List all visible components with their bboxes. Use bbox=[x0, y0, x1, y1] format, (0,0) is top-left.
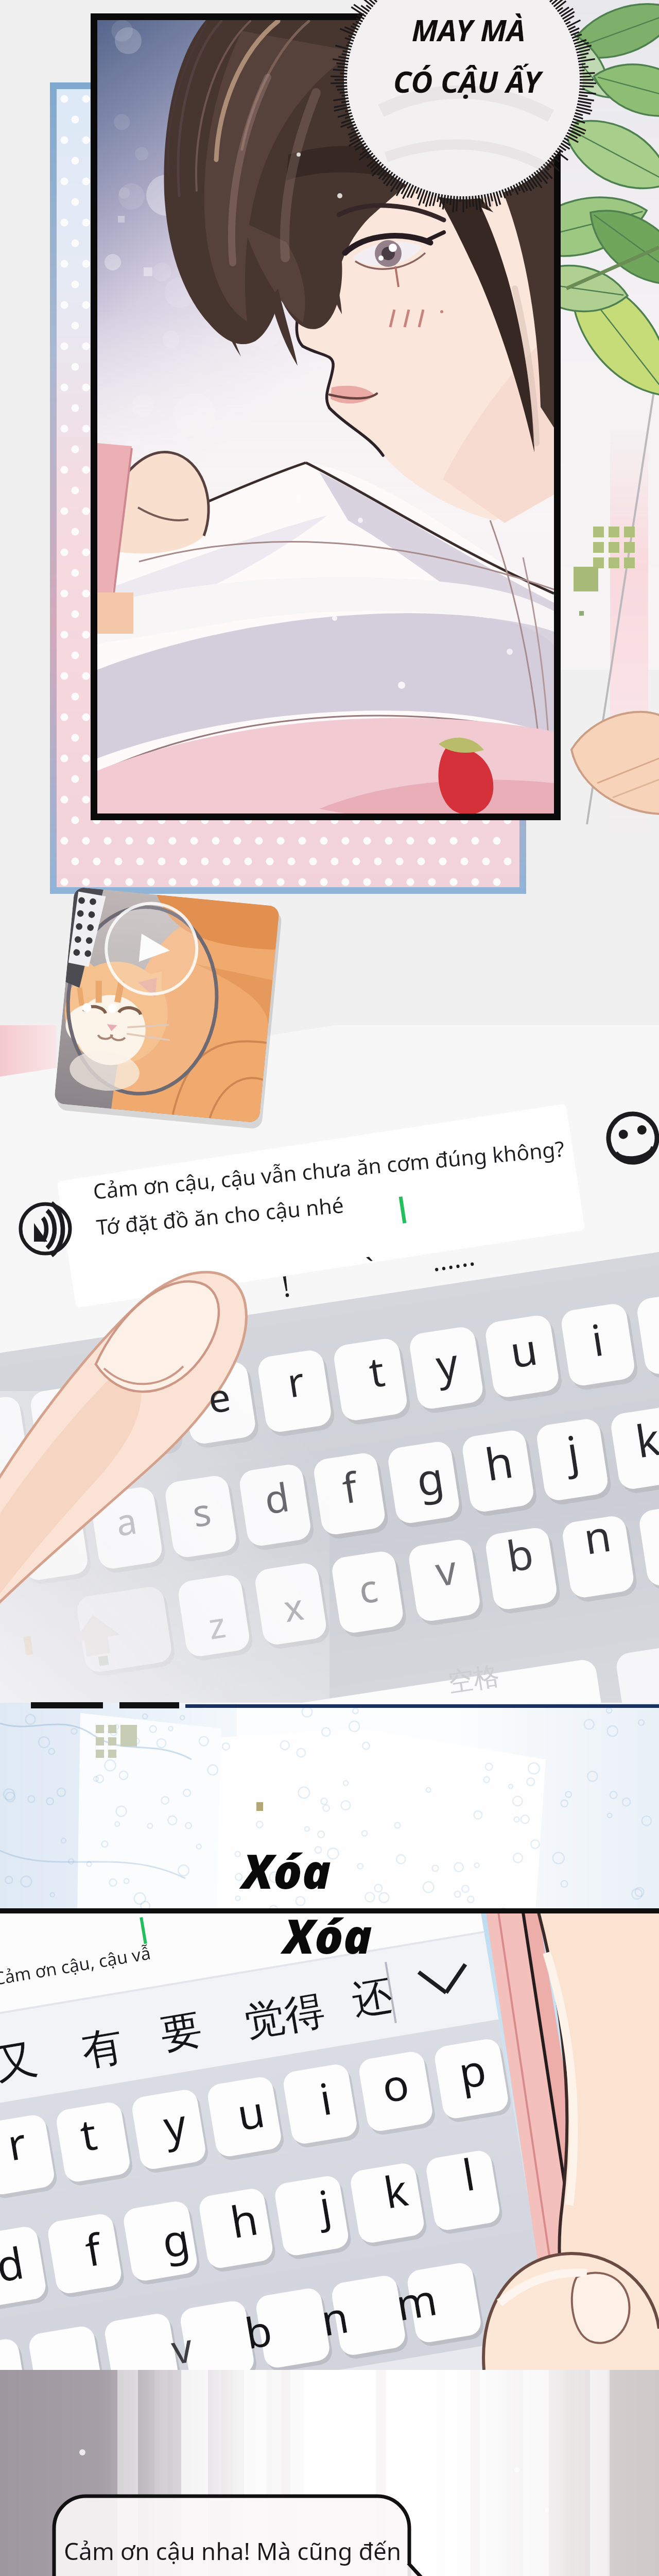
staticText: y bbox=[159, 2093, 191, 2155]
staticText: n bbox=[580, 1505, 615, 1567]
button[interactable]: Xóa bbox=[283, 1903, 372, 1968]
staticText: b bbox=[240, 2300, 276, 2361]
staticText: Tớ đặt đồ ăn cho cậu nhé bbox=[95, 1190, 345, 1241]
staticText: CÓ CẬU ẤY bbox=[346, 61, 588, 101]
staticText: 又 bbox=[0, 2032, 42, 2092]
staticText: m bbox=[391, 2269, 441, 2333]
staticText: j bbox=[314, 2175, 335, 2235]
staticText: v bbox=[432, 1541, 460, 1598]
staticText: a bbox=[112, 1495, 140, 1546]
staticText: ...... bbox=[429, 1236, 477, 1279]
staticText: k bbox=[379, 2159, 412, 2221]
staticText: ` bbox=[364, 1247, 378, 1287]
staticText: 觉得 bbox=[241, 1985, 328, 2048]
staticText: Cảm ơn cậu, cậu vẫn chưa ăn cơm đúng khô… bbox=[92, 1134, 566, 1205]
staticText: i bbox=[587, 1309, 607, 1369]
staticText: u bbox=[233, 2081, 269, 2143]
staticText: l bbox=[458, 2144, 479, 2204]
staticText: 有 bbox=[78, 2020, 127, 2078]
staticText: giờ ăn rồi, cậu vẫn chưa ăn cơm bbox=[63, 2574, 403, 2576]
button[interactable]: Cảm ơn cậu nha! Mà cũng đến bbox=[63, 2535, 403, 2576]
staticText: f bbox=[338, 1458, 361, 1515]
staticText: j bbox=[562, 1420, 583, 1482]
staticText: ! bbox=[279, 1265, 293, 1305]
staticText: r bbox=[3, 2112, 30, 2173]
button[interactable]: CÓ CẬU ẤY bbox=[346, 61, 588, 101]
staticText: Xóa bbox=[283, 1903, 372, 1968]
staticText: h bbox=[481, 1430, 517, 1494]
staticText: f bbox=[81, 2219, 105, 2279]
staticText: d bbox=[261, 1469, 293, 1526]
staticText: u bbox=[506, 1318, 541, 1380]
staticText: t bbox=[365, 1342, 388, 1400]
staticText: t bbox=[76, 2103, 101, 2164]
staticText: d bbox=[0, 2232, 28, 2294]
staticText: n bbox=[317, 2286, 353, 2349]
staticText: y bbox=[432, 1333, 462, 1393]
button[interactable]: MAY MÀ bbox=[360, 9, 577, 50]
staticText: o bbox=[377, 2053, 413, 2115]
staticText: Cảm ơn cậu nha! Mà cũng đến bbox=[64, 2535, 402, 2567]
staticText: s bbox=[189, 1485, 214, 1538]
staticText: i bbox=[315, 2068, 336, 2128]
staticText: g bbox=[412, 1447, 448, 1509]
staticText: z bbox=[205, 1600, 228, 1650]
staticText: r bbox=[283, 1353, 308, 1410]
staticText: x bbox=[280, 1581, 307, 1632]
staticText: c bbox=[355, 1561, 381, 1615]
staticText: 空格 bbox=[446, 1659, 502, 1699]
staticText: k bbox=[631, 1408, 659, 1471]
staticText: MAY MÀ bbox=[360, 9, 577, 50]
staticText: 要 bbox=[157, 2003, 206, 2061]
staticText: h bbox=[226, 2188, 262, 2251]
staticText: g bbox=[157, 2208, 194, 2270]
button[interactable]: Xóa bbox=[242, 1838, 331, 1903]
staticText: v bbox=[167, 2319, 196, 2376]
staticText: e bbox=[204, 1369, 234, 1425]
staticText: b bbox=[502, 1523, 537, 1584]
staticText: p bbox=[454, 2039, 490, 2101]
staticText: Cảm ơn cậu, cậu vẫ bbox=[0, 1941, 152, 1990]
staticText: 还 bbox=[348, 1970, 396, 2026]
staticText: Xóa bbox=[242, 1838, 331, 1903]
